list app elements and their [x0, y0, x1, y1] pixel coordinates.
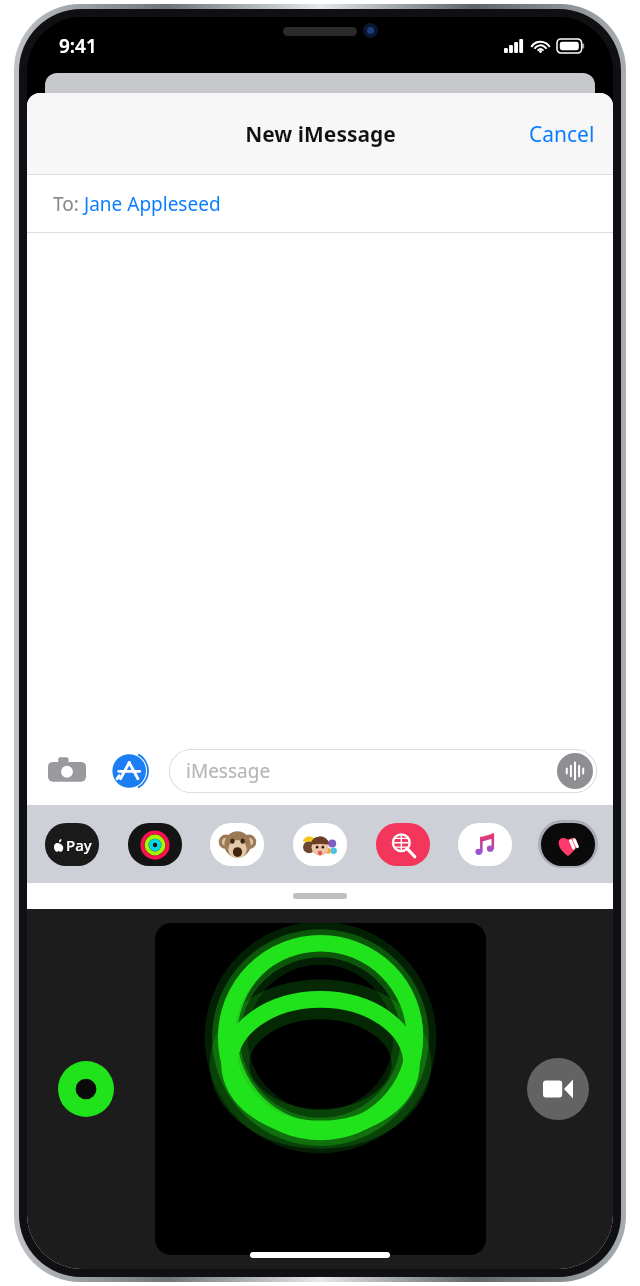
staticText: Pay [66, 835, 92, 855]
button[interactable]: To: [27, 175, 613, 233]
button[interactable]: Cancel [511, 108, 613, 161]
button[interactable]: Animoji monkey [206, 819, 268, 869]
button[interactable]: Memoji stickers [289, 819, 351, 869]
button[interactable]: Record heartbeat [55, 1058, 117, 1120]
button[interactable]: Activity rings [124, 819, 186, 869]
button[interactable]: Apple Pay [41, 819, 103, 869]
staticText: 9:41 [59, 33, 97, 59]
button[interactable]: iMessage [169, 749, 597, 793]
staticText: Jane Appleseed [84, 191, 221, 217]
staticText: iMessage [186, 758, 271, 784]
staticText: Cancel [529, 120, 595, 149]
button[interactable]: Record video [527, 1058, 589, 1120]
staticText: New iMessage [245, 120, 396, 149]
button[interactable]: Digital Touch canvas [155, 923, 486, 1255]
button[interactable]: Record audio message [557, 753, 593, 789]
button[interactable]: Digital Touch [537, 819, 599, 869]
button[interactable]: Drag handle [27, 883, 613, 909]
staticText: To: [53, 191, 84, 217]
button[interactable]: Camera [43, 747, 91, 795]
button[interactable]: Image search [372, 819, 434, 869]
button[interactable]: Music [454, 819, 516, 869]
button[interactable]: App Store [107, 747, 155, 795]
